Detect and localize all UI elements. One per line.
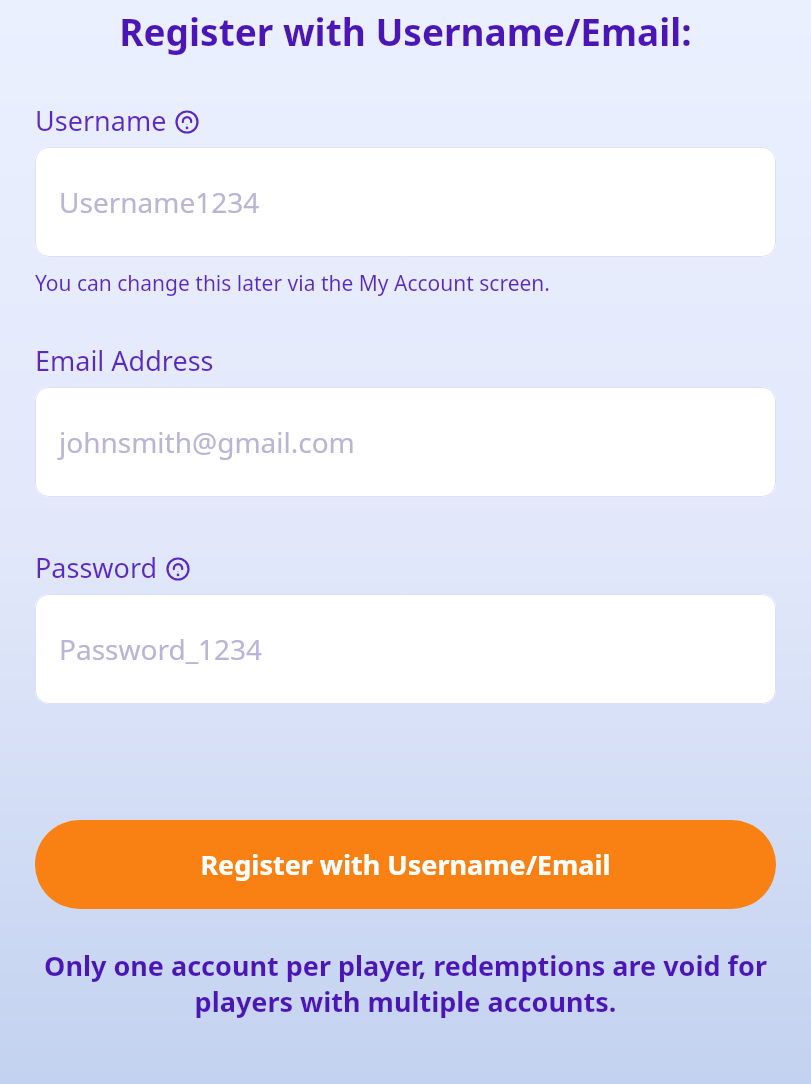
staticText: You can change this later via the My Acc… — [35, 269, 550, 298]
button[interactable]: Register with Username/Email — [35, 820, 776, 909]
other: Help — [166, 557, 190, 581]
staticText: Email Address — [35, 342, 214, 379]
staticText: Register with Username/Email: — [119, 6, 692, 56]
staticText: Password — [35, 549, 158, 586]
button[interactable]: Username — [35, 147, 776, 257]
staticText: Only one account per player, redemptions… — [35, 947, 776, 1020]
staticText: Username1234 — [59, 183, 260, 221]
staticText: johnsmith@gmail.com — [59, 423, 355, 461]
staticText: Username — [35, 102, 167, 139]
staticText: Register with Username/Email — [200, 846, 611, 883]
button[interactable]: Email Address — [35, 387, 776, 497]
staticText: Password_1234 — [59, 630, 263, 668]
button[interactable]: Password — [35, 594, 776, 704]
other: Help — [175, 110, 199, 134]
